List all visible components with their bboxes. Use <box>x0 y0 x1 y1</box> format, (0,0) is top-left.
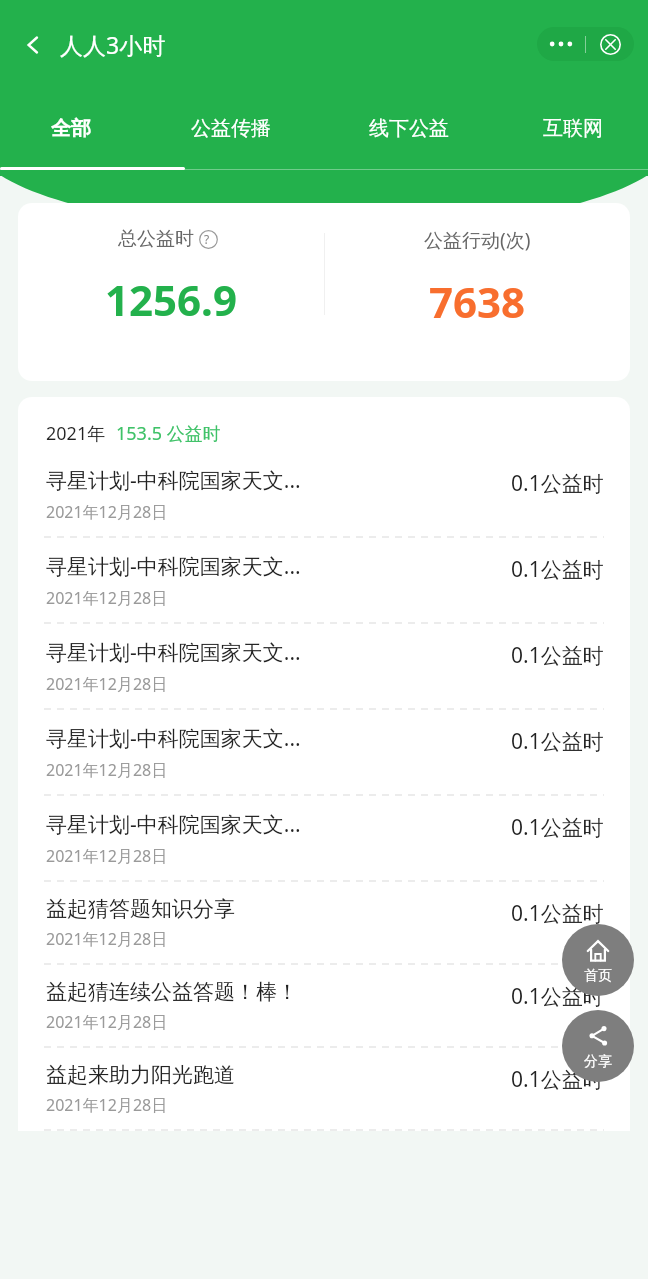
staticText: 0.1公益时 <box>511 641 604 670</box>
staticText: 0.1公益时 <box>511 899 604 928</box>
button[interactable]: 益起猜答题知识分享 <box>18 882 630 965</box>
staticText: 寻星计划-中科院国家天文... <box>46 724 301 753</box>
staticText: 总公益时 <box>118 227 194 251</box>
staticText: 益起来助力阳光跑道 <box>46 1062 235 1088</box>
button[interactable]: 线下公益 <box>320 88 498 168</box>
button[interactable]: 总公益时 <box>18 203 324 328</box>
staticText: 2021年12月28日 <box>46 501 168 523</box>
staticText: 公益行动(次) <box>424 227 531 253</box>
staticText: 益起猜连续公益答题！棒！ <box>46 979 298 1005</box>
button[interactable]: 益起猜连续公益答题！棒！ <box>18 965 630 1048</box>
staticText: 分享 <box>584 1053 612 1071</box>
button[interactable]: 公益行动(次) <box>324 203 630 330</box>
staticText: 寻星计划-中科院国家天文... <box>46 466 301 495</box>
staticText: 2021年 <box>46 421 106 446</box>
staticText: 0.1公益时 <box>511 1065 604 1094</box>
staticText: 0.1公益时 <box>511 469 604 498</box>
staticText: 0.1公益时 <box>511 555 604 584</box>
button[interactable]: 全部 <box>0 88 142 168</box>
button[interactable]: 寻星计划-中科院国家天文... <box>18 452 630 538</box>
staticText: 2021年12月28日 <box>46 587 168 609</box>
staticText: ? <box>204 231 210 247</box>
button[interactable]: Close <box>586 27 634 61</box>
button[interactable]: 寻星计划-中科院国家天文... <box>18 624 630 710</box>
button[interactable]: Share <box>562 1010 634 1082</box>
staticText: 寻星计划-中科院国家天文... <box>46 552 301 581</box>
staticText: 互联网 <box>543 116 603 141</box>
staticText: 2021年12月28日 <box>46 1094 168 1116</box>
staticText: 1256.9 <box>105 271 237 328</box>
staticText: 寻星计划-中科院国家天文... <box>46 638 301 667</box>
staticText: 2021年12月28日 <box>46 673 168 695</box>
staticText: 寻星计划-中科院国家天文... <box>46 810 301 839</box>
button[interactable]: 益起来助力阳光跑道 <box>18 1048 630 1131</box>
staticText: 7638 <box>429 273 526 330</box>
button[interactable]: Home <box>562 924 634 996</box>
staticText: 0.1公益时 <box>511 813 604 842</box>
button[interactable]: 寻星计划-中科院国家天文... <box>18 796 630 882</box>
staticText: 2021年12月28日 <box>46 759 168 781</box>
staticText: 益起猜答题知识分享 <box>46 896 235 922</box>
staticText: 首页 <box>584 967 612 985</box>
button[interactable]: 公益传播 <box>142 88 320 168</box>
staticText: 人人3小时 <box>60 29 166 60</box>
button[interactable]: 寻星计划-中科院国家天文... <box>18 710 630 796</box>
button[interactable]: More <box>537 27 585 61</box>
staticText: 全部 <box>51 116 91 141</box>
staticText: 2021年12月28日 <box>46 928 168 950</box>
button[interactable]: 寻星计划-中科院国家天文... <box>18 538 630 624</box>
button[interactable]: Back <box>14 23 174 66</box>
staticText: 线下公益 <box>369 116 449 141</box>
staticText: 2021年12月28日 <box>46 1011 168 1033</box>
staticText: 0.1公益时 <box>511 727 604 756</box>
staticText: 0.1公益时 <box>511 982 604 1011</box>
staticText: 公益传播 <box>191 116 271 141</box>
button[interactable]: 互联网 <box>498 88 648 168</box>
staticText: 153.5 公益时 <box>116 421 221 446</box>
staticText: 2021年12月28日 <box>46 845 168 867</box>
